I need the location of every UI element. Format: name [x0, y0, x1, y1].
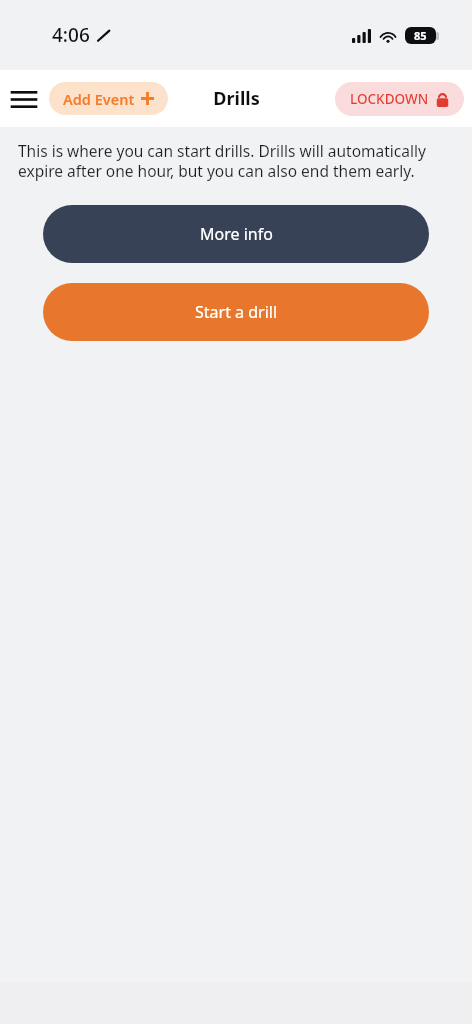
button[interactable]: Start a drill	[43, 283, 429, 341]
button[interactable]: Add Event	[49, 82, 168, 115]
staticText: LOCKDOWN	[350, 90, 429, 108]
staticText: More info	[200, 223, 273, 245]
staticText: 85	[414, 28, 427, 43]
button[interactable]: LOCKDOWN	[335, 82, 464, 116]
staticText: 4:06	[52, 22, 90, 48]
button[interactable]: More info	[43, 205, 429, 263]
staticText: Add Event	[63, 89, 135, 109]
button[interactable]: Open navigation menu	[10, 85, 38, 113]
staticText: This is where you can start drills. Dril…	[18, 140, 454, 182]
staticText: Drills	[213, 86, 260, 111]
staticText: Start a drill	[195, 301, 278, 323]
